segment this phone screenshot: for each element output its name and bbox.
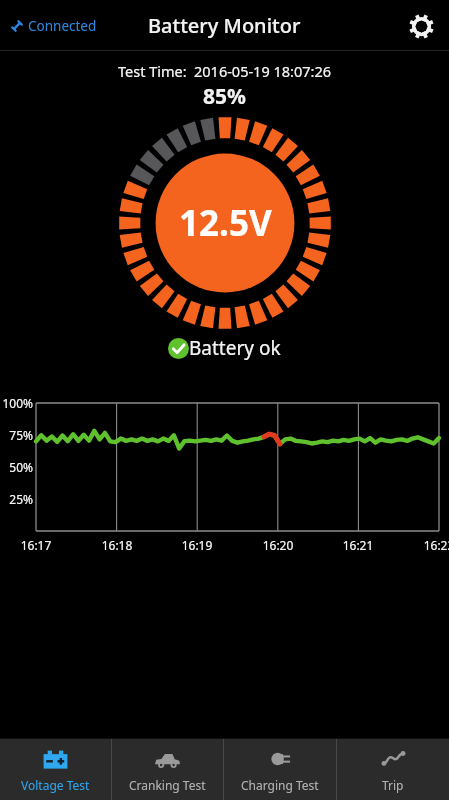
staticText: 25% bbox=[0, 491, 33, 507]
staticText: Connected bbox=[28, 17, 97, 35]
staticText: Battery Monitor bbox=[148, 12, 301, 39]
staticText: Battery ok bbox=[189, 335, 281, 361]
staticText: 50% bbox=[0, 459, 33, 475]
staticText: 85% bbox=[203, 82, 246, 111]
staticText: 16:20 bbox=[256, 537, 300, 553]
button[interactable]: Trip bbox=[337, 738, 449, 800]
button[interactable]: Connected bbox=[6, 12, 101, 40]
staticText: Cranking Test bbox=[129, 777, 206, 793]
staticText: 2016-05-19 18:07:26 bbox=[194, 61, 331, 81]
staticText: 16:17 bbox=[14, 537, 58, 553]
staticText: 12.5V bbox=[179, 199, 272, 247]
staticText: Trip bbox=[382, 777, 404, 793]
button[interactable]: Cranking Test bbox=[112, 738, 223, 800]
staticText: 16:21 bbox=[336, 537, 380, 553]
staticText: 16:18 bbox=[95, 537, 139, 553]
staticText: 75% bbox=[0, 427, 33, 443]
button[interactable]: Settings bbox=[403, 8, 439, 44]
staticText: 16:19 bbox=[175, 537, 219, 553]
staticText: Charging Test bbox=[241, 777, 319, 793]
button[interactable]: Voltage Test bbox=[0, 738, 111, 800]
staticText: 100% bbox=[0, 395, 33, 411]
button[interactable]: Charging Test bbox=[224, 738, 336, 800]
staticText: Test Time: bbox=[118, 61, 187, 81]
staticText: 16:22 bbox=[417, 537, 449, 553]
staticText: Voltage Test bbox=[21, 777, 90, 793]
